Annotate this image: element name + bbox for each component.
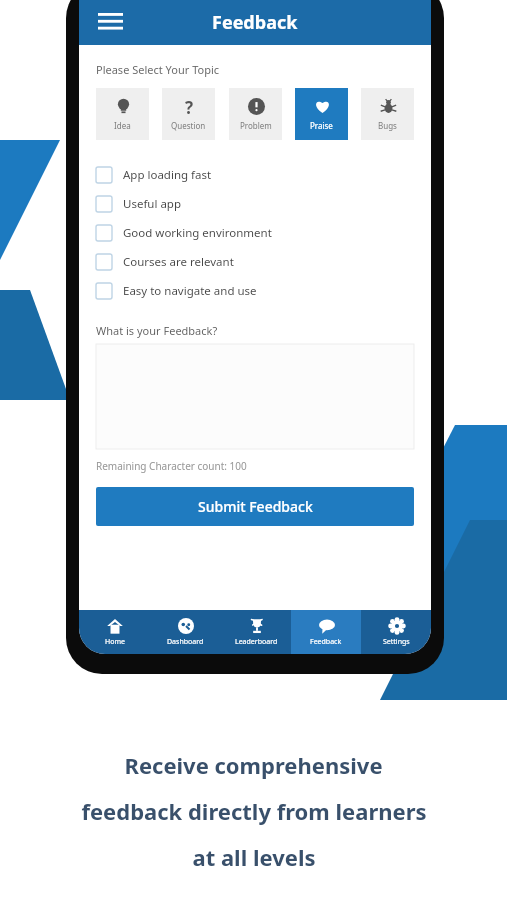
staticText: Easy to navigate and use (123, 283, 257, 299)
staticText: ? (185, 96, 194, 116)
button[interactable]: Easy to navigate and use (96, 276, 414, 305)
staticText: Home (105, 637, 125, 647)
button[interactable]: Bugs (361, 88, 414, 140)
button[interactable]: ? (162, 88, 215, 140)
button[interactable]: Praise (295, 88, 348, 140)
staticText: Question (171, 120, 206, 131)
button[interactable]: Menu (95, 8, 125, 38)
button[interactable]: Leaderboard (221, 610, 291, 654)
staticText: Remaining Character count: 100 (96, 459, 247, 473)
staticText: What is your Feedback? (96, 323, 218, 338)
staticText: Useful app (123, 196, 182, 212)
button[interactable]: Good working environment (96, 218, 414, 247)
button[interactable]: Feedback (291, 610, 361, 654)
staticText: Idea (114, 120, 131, 131)
staticText: Courses are relevant (123, 254, 234, 270)
staticText: App loading fast (123, 167, 212, 183)
staticText: Submit Feedback (198, 497, 313, 516)
staticText: feedback directly from learners (81, 796, 427, 826)
staticText: at all levels (192, 842, 316, 872)
staticText: Bugs (378, 120, 397, 131)
button[interactable]: Submit Feedback (96, 487, 414, 526)
button[interactable]: Problem (229, 88, 282, 140)
staticText: Dashboard (167, 637, 204, 647)
button[interactable]: Settings (361, 610, 431, 654)
staticText: Feedback (212, 10, 298, 35)
staticText: Receive comprehensive (124, 750, 383, 780)
staticText: Please Select Your Topic (96, 62, 220, 77)
staticText: Good working environment (123, 225, 272, 241)
staticText: Settings (383, 637, 410, 647)
button[interactable]: App loading fast (96, 160, 414, 189)
staticText: Leaderboard (235, 637, 278, 647)
button[interactable]: Useful app (96, 189, 414, 218)
button[interactable]: Home (79, 610, 150, 654)
button[interactable]: Dashboard (150, 610, 221, 654)
staticText: Problem (240, 120, 272, 131)
staticText: Praise (310, 120, 333, 131)
button[interactable]: Idea (96, 88, 149, 140)
button[interactable]: Courses are relevant (96, 247, 414, 276)
staticText: Feedback (310, 637, 342, 647)
